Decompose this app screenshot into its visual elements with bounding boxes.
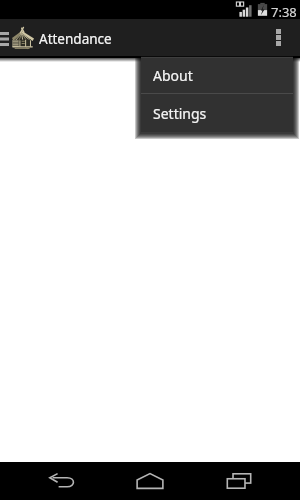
button[interactable]: Navigation drawer bbox=[0, 19, 112, 56]
other: Navigation drawer bbox=[0, 32, 9, 46]
staticText: About bbox=[153, 66, 193, 85]
staticText: Settings bbox=[153, 104, 207, 123]
staticText: Attendance bbox=[39, 30, 112, 48]
button[interactable]: More options bbox=[257, 19, 300, 56]
staticText: 7:38 bbox=[271, 3, 297, 21]
button[interactable]: Recent apps bbox=[213, 462, 265, 500]
button[interactable]: Home bbox=[124, 462, 176, 500]
button[interactable]: Settings bbox=[141, 94, 293, 132]
button[interactable]: Back bbox=[36, 462, 88, 500]
button[interactable]: About bbox=[141, 58, 293, 93]
